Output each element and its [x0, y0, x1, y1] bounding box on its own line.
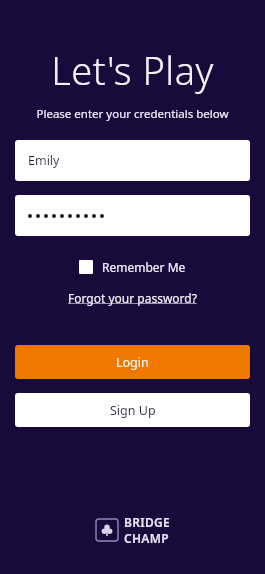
button[interactable]: Login: [15, 345, 250, 379]
staticText: CHAMP: [124, 530, 169, 546]
button[interactable]: Remember Me: [75, 256, 190, 278]
staticText: Emily: [28, 152, 60, 169]
staticText: BRIDGE: [124, 514, 171, 530]
staticText: Sign Up: [110, 402, 156, 419]
staticText: Forgot your password?: [68, 290, 197, 306]
button[interactable]: Sign Up: [15, 393, 250, 427]
button[interactable]: Forgot your password?: [64, 288, 201, 308]
staticText: Let's Play: [51, 44, 214, 96]
staticText: Login: [116, 354, 149, 371]
button[interactable]: Emily: [15, 140, 250, 181]
staticText: Remember Me: [102, 259, 186, 275]
button[interactable]: [15, 195, 250, 236]
staticText: Please enter your credentials below: [36, 106, 229, 122]
